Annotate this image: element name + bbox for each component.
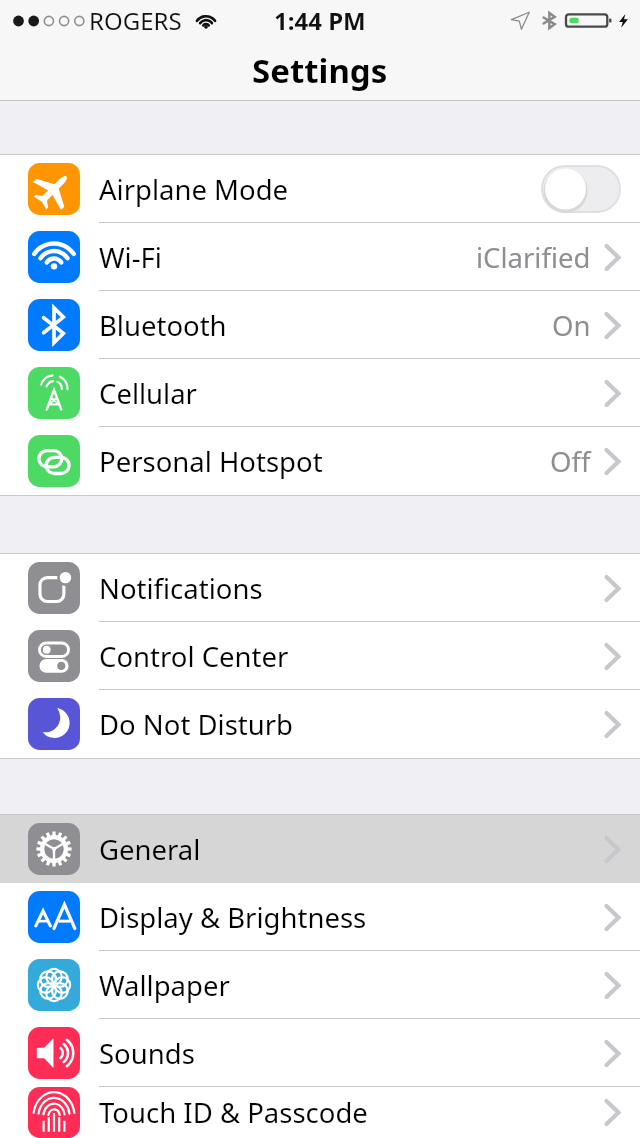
staticText: Settings [252,48,388,93]
staticText: Wi-Fi [99,239,162,276]
staticText: Airplane Mode [99,171,289,208]
staticText: iClarified [476,239,591,276]
staticText: 1:44 PM [274,4,366,37]
button[interactable]: Control Center [0,622,640,690]
staticText: General [99,831,201,868]
button[interactable]: Notifications [0,554,640,622]
staticText: On [552,307,591,344]
staticText: Touch ID & Passcode [99,1094,368,1131]
staticText: Sounds [99,1035,195,1072]
button[interactable]: Sounds [0,1019,640,1087]
button[interactable]: Cellular [0,359,640,427]
staticText: Cellular [99,375,197,412]
button[interactable]: Wallpaper [0,951,640,1019]
button[interactable]: General [0,815,640,883]
button[interactable]: Airplane Mode [0,155,640,223]
button[interactable]: Touch ID & Passcode [0,1087,640,1138]
button[interactable]: Display & Brightness [0,883,640,951]
staticText: Off [550,443,591,480]
staticText: Bluetooth [99,307,227,344]
staticText: Notifications [99,570,263,607]
button[interactable]: Do Not Disturb [0,690,640,758]
button[interactable]: Bluetooth [0,291,640,359]
staticText: ROGERS [89,4,182,37]
staticText: Display & Brightness [99,899,367,936]
button[interactable]: Wi-Fi [0,223,640,291]
staticText: Control Center [99,638,289,675]
button[interactable]: Personal Hotspot [0,427,640,495]
staticText: Personal Hotspot [99,443,323,480]
staticText: Do Not Disturb [99,706,294,743]
staticText: Wallpaper [99,967,230,1004]
